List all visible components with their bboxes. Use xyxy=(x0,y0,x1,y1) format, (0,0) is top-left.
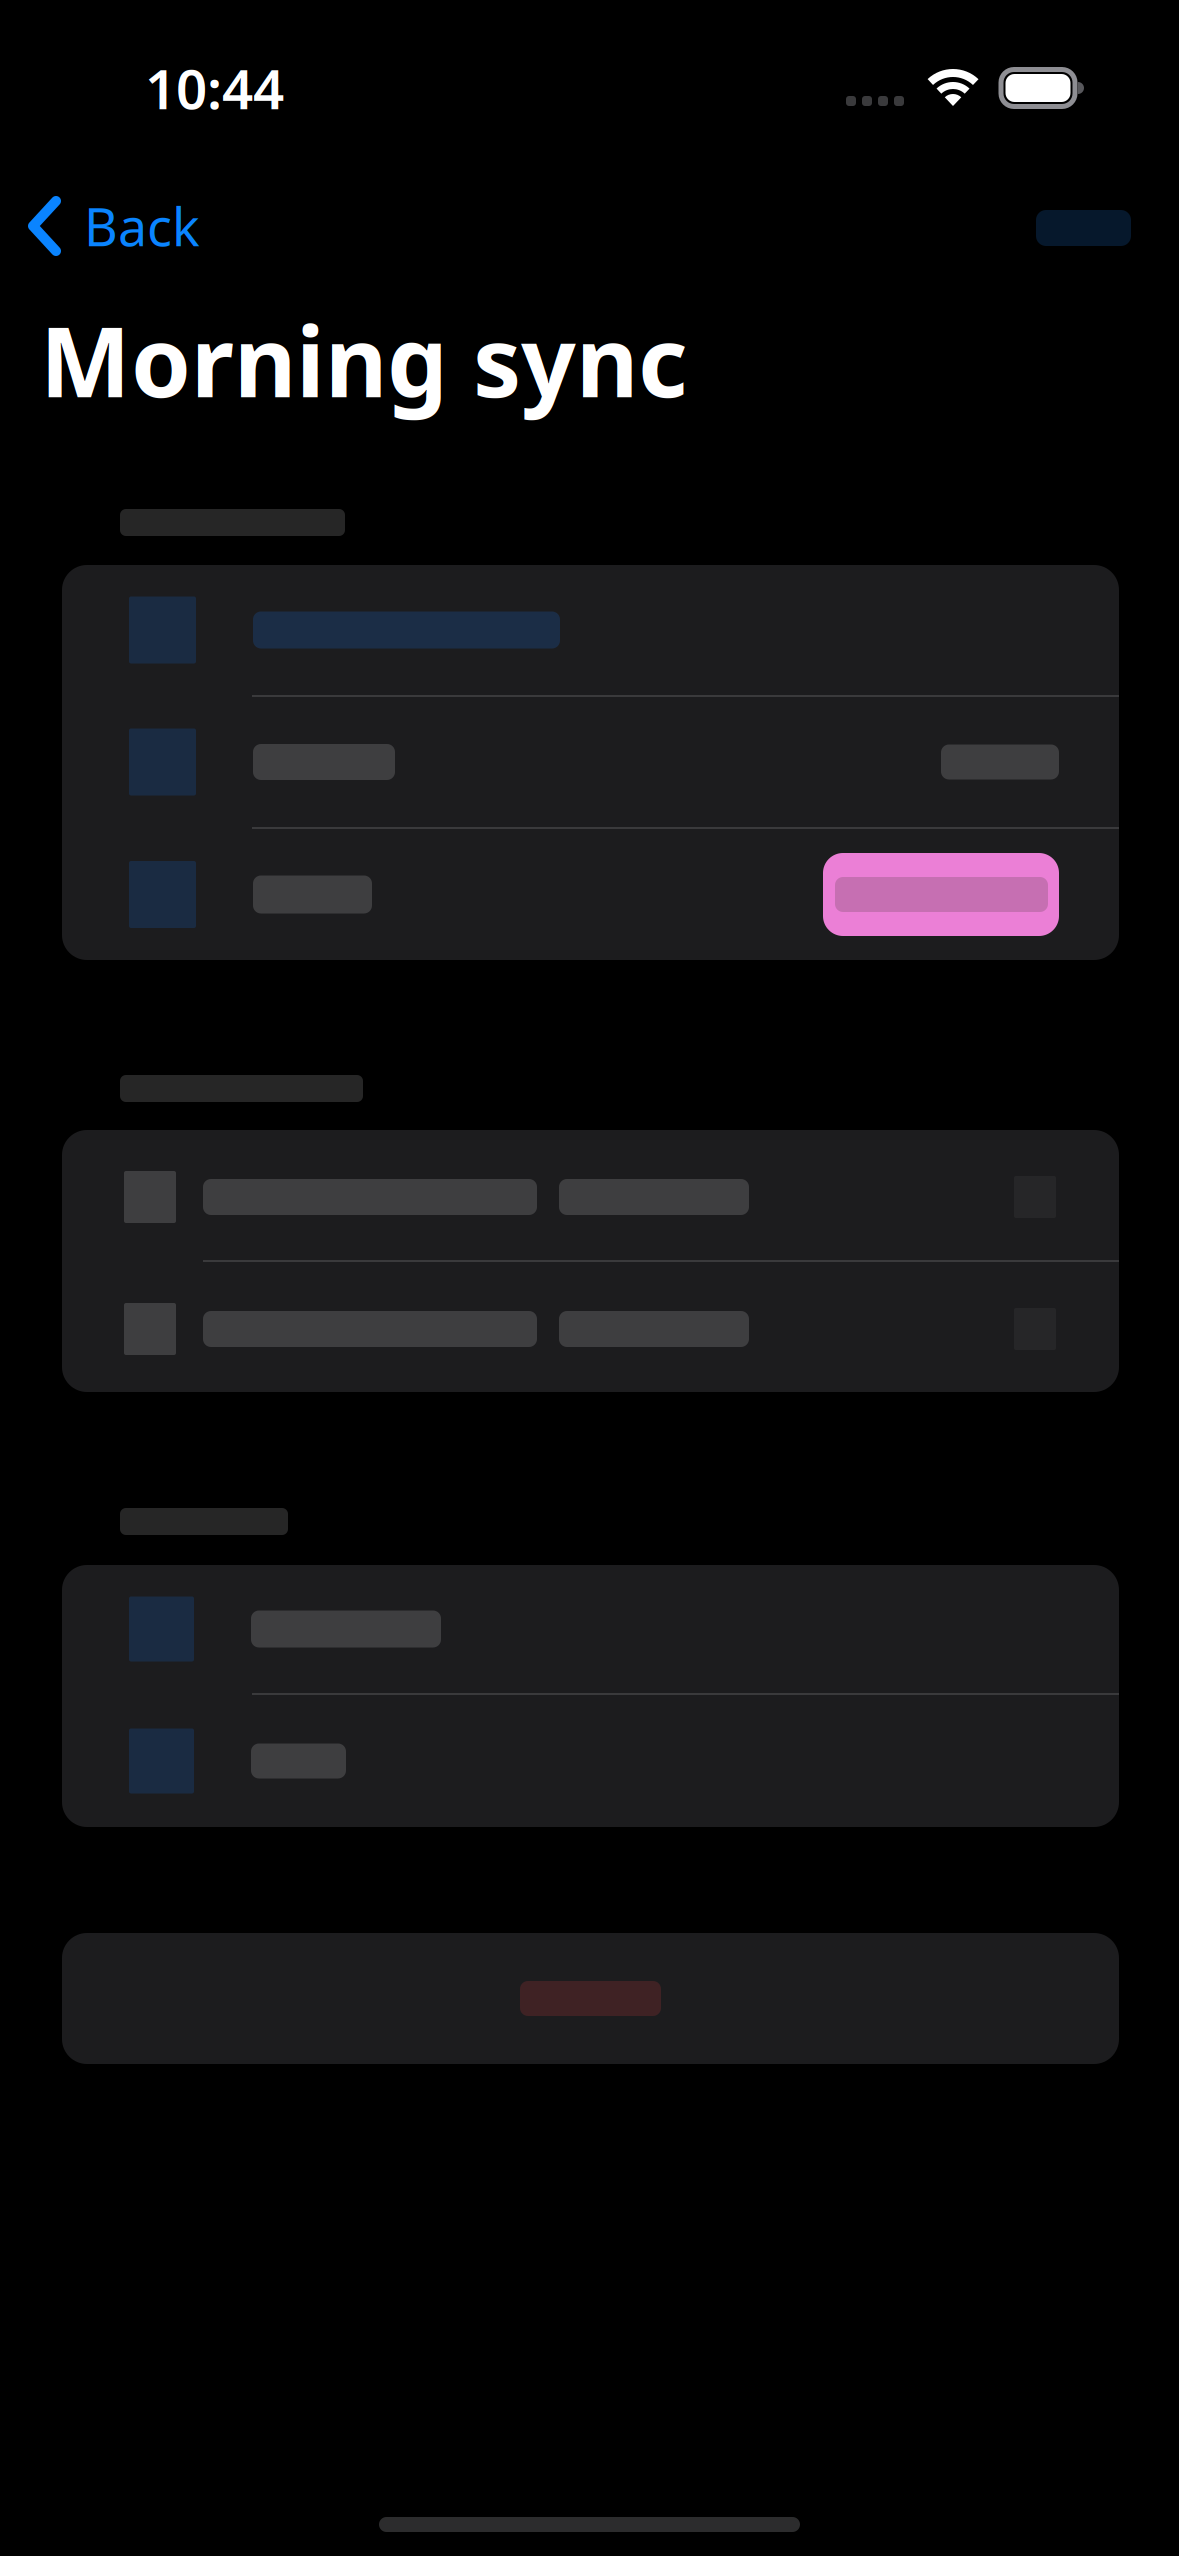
button[interactable]: Back xyxy=(0,176,518,276)
button[interactable] xyxy=(62,1695,1119,1827)
button[interactable]: More xyxy=(1036,176,1179,276)
button[interactable] xyxy=(62,1130,1119,1260)
button[interactable] xyxy=(62,1565,1119,1693)
button[interactable] xyxy=(62,1933,1119,2064)
button[interactable] xyxy=(62,697,1119,827)
staticText: 10:44 xyxy=(145,52,284,124)
button[interactable] xyxy=(62,565,1119,695)
staticText: Back xyxy=(84,191,200,261)
staticText: Morning sync xyxy=(40,296,688,424)
button[interactable] xyxy=(62,1262,1119,1392)
button[interactable] xyxy=(62,829,1119,960)
